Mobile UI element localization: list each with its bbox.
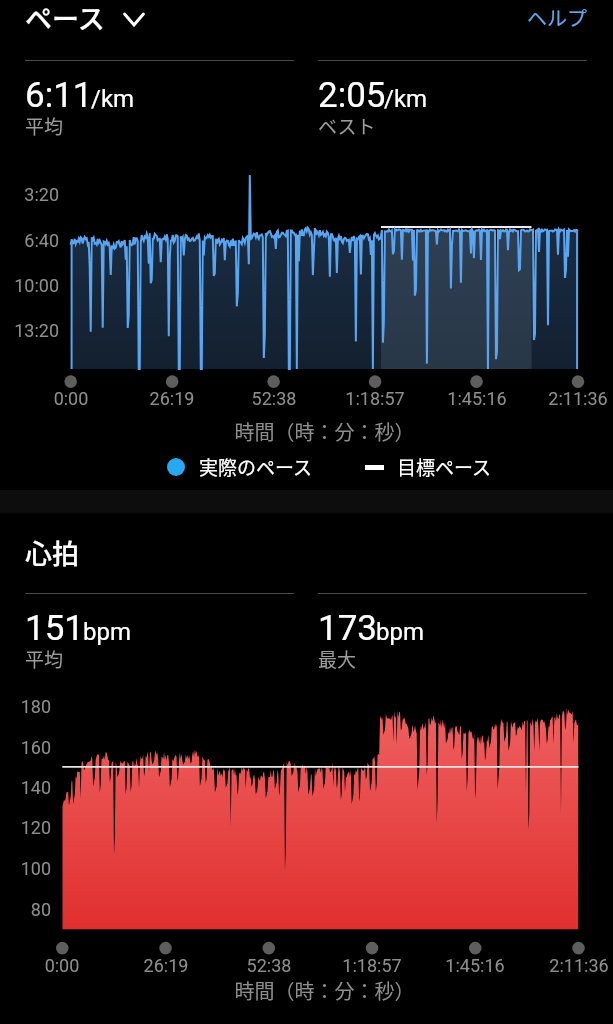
button[interactable]: ペース: [25, 0, 145, 37]
staticText: 52:38: [209, 388, 339, 409]
button[interactable]: 151: [25, 593, 294, 677]
staticText: 100: [0, 858, 51, 879]
button[interactable]: 6:11: [25, 60, 294, 144]
button[interactable]: 目標ペース: [365, 453, 492, 481]
staticText: 2:05: [318, 75, 386, 116]
staticText: 平均: [25, 112, 64, 140]
staticText: 180: [0, 696, 51, 717]
staticText: 時間（時：分：秒）: [18, 976, 613, 1005]
staticText: 実際のペース: [199, 453, 313, 481]
staticText: ベスト: [318, 112, 376, 140]
staticText: 80: [0, 899, 51, 920]
staticText: 160: [0, 737, 51, 758]
staticText: 0:00: [6, 388, 136, 409]
button[interactable]: 実際のペース: [167, 453, 313, 481]
staticText: 1:45:16: [412, 388, 542, 409]
staticText: 26:19: [107, 388, 237, 409]
staticText: 1:18:57: [307, 955, 437, 976]
staticText: /km: [384, 85, 428, 113]
staticText: ペース: [25, 0, 105, 37]
staticText: 140: [0, 777, 51, 798]
staticText: 151: [25, 608, 85, 649]
button[interactable]: 173: [318, 593, 587, 677]
staticText: 52:38: [204, 955, 334, 976]
staticText: 平均: [25, 645, 64, 673]
staticText: 心拍: [25, 533, 79, 572]
staticText: 目標ペース: [397, 453, 492, 481]
staticText: bpm: [376, 618, 424, 646]
staticText: 6:11: [25, 75, 93, 116]
staticText: 0:00: [0, 955, 127, 976]
staticText: 1:45:16: [410, 955, 540, 976]
staticText: 時間（時：分：秒）: [18, 417, 613, 446]
staticText: 2:11:36: [513, 388, 613, 409]
staticText: 120: [0, 817, 51, 838]
button[interactable]: ヘルプ: [527, 3, 587, 32]
staticText: 最大: [318, 645, 357, 673]
staticText: 2:11:36: [514, 955, 613, 976]
staticText: 1:18:57: [310, 388, 440, 409]
staticText: 173: [318, 608, 378, 649]
staticText: bpm: [83, 618, 131, 646]
other: Expand: [123, 12, 145, 27]
staticText: 3:20: [0, 184, 59, 205]
button[interactable]: 2:05: [318, 60, 587, 144]
staticText: 10:00: [0, 275, 59, 296]
staticText: 13:20: [0, 320, 59, 341]
staticText: 26:19: [101, 955, 231, 976]
staticText: 6:40: [0, 230, 59, 251]
staticText: /km: [91, 85, 135, 113]
